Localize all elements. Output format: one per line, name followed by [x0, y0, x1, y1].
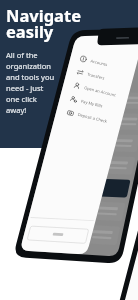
other: Deposit a Check [66, 108, 75, 117]
other: Pay My Bills [69, 95, 78, 103]
other: Accounts [79, 55, 88, 63]
button[interactable]: Accounts [70, 50, 133, 77]
button[interactable]: Open an Account [63, 77, 127, 104]
button[interactable]: Deposit a Check [57, 103, 120, 130]
other: Open an Account [73, 82, 81, 90]
staticText: Accounts [90, 58, 109, 67]
other: Transfers [76, 68, 84, 77]
staticText: All of the organization and tools you ne… [6, 50, 55, 115]
staticText: Open an Account [84, 85, 117, 98]
button[interactable]: Pay My Bills [60, 90, 123, 117]
staticText: Pay My Bills [80, 98, 104, 109]
button[interactable]: Transfers [66, 63, 130, 90]
staticText: Transfers [87, 72, 106, 81]
staticText: Navigate easily [6, 4, 81, 42]
staticText: Deposit a Check [77, 112, 108, 124]
